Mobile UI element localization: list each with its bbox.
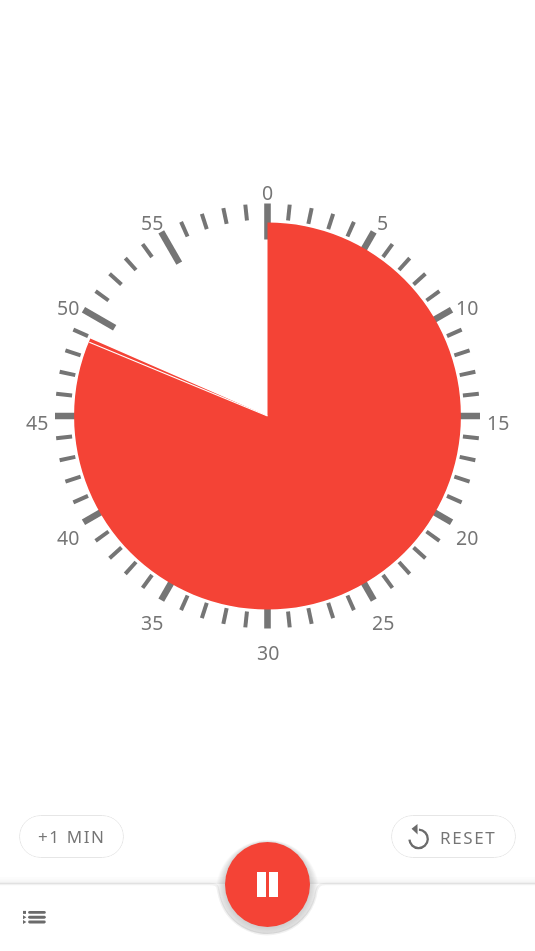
staticText: 20 [456, 524, 479, 551]
staticText: 55 [141, 209, 164, 236]
button[interactable]: RESET [391, 815, 516, 858]
staticText: 0 [262, 179, 274, 206]
staticText: 5 [377, 209, 389, 236]
staticText: 15 [487, 409, 510, 436]
button[interactable]: +1 MIN [19, 815, 124, 858]
staticText: 50 [57, 294, 80, 321]
staticText: 40 [57, 524, 80, 551]
button[interactable]: Timer list [12, 895, 56, 939]
staticText: 25 [372, 609, 395, 636]
staticText: 10 [456, 294, 479, 321]
button[interactable]: Pause timer [225, 842, 310, 927]
staticText: RESET [440, 826, 497, 849]
staticText: 30 [257, 639, 280, 666]
staticText: 45 [26, 409, 49, 436]
staticText: 35 [141, 609, 164, 636]
staticText: +1 MIN [38, 825, 106, 848]
